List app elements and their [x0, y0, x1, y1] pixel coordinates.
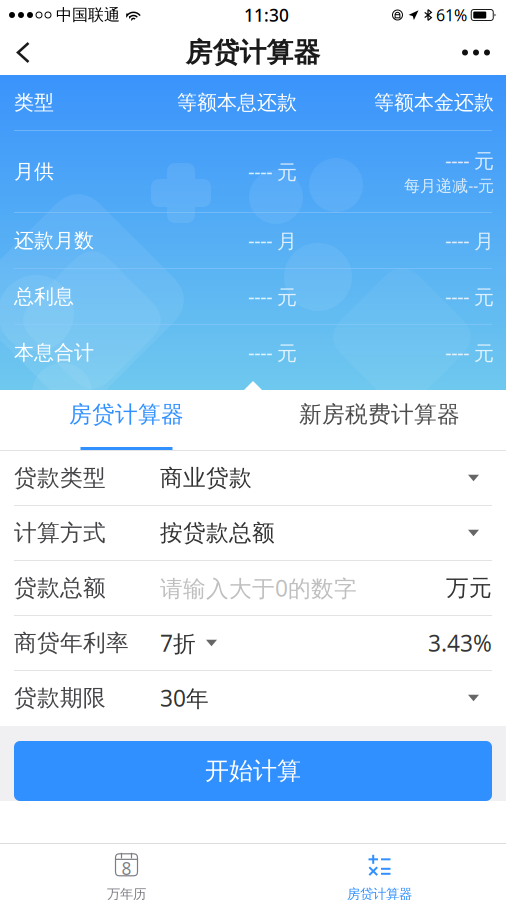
staticText: 计算方式 — [14, 519, 106, 547]
button[interactable]: 贷款类型 — [0, 451, 506, 505]
staticText: ---- 元 — [248, 283, 297, 310]
staticText: 新房税费计算器 — [299, 401, 460, 428]
staticText: 按贷款总额 — [160, 519, 275, 547]
staticText: 61% — [436, 4, 467, 26]
staticText: 等额本息还款 — [177, 90, 297, 115]
staticText: 11:30 — [244, 3, 289, 26]
staticText: 请输入大于0的数字 — [160, 573, 357, 603]
staticText: ---- 月 — [248, 227, 297, 254]
staticText: ---- 月 — [445, 227, 494, 254]
staticText: ---- 元 — [445, 147, 494, 174]
staticText: 7折 — [160, 628, 196, 658]
staticText: 房贷计算器 — [69, 401, 184, 428]
staticText: 总利息 — [14, 284, 74, 309]
button[interactable]: 贷款总额 — [0, 561, 506, 615]
button[interactable]: 计算方式 — [0, 506, 506, 560]
staticText: 房贷计算器 — [185, 36, 320, 69]
button[interactable]: 房贷计算器 — [0, 390, 253, 450]
staticText: 商业贷款 — [160, 464, 252, 492]
staticText: ---- 元 — [445, 339, 494, 366]
button[interactable]: 返回 — [0, 30, 47, 75]
button[interactable]: 房贷计算器 — [253, 844, 506, 900]
staticText: 万元 — [446, 574, 492, 602]
staticText: 贷款类型 — [14, 464, 106, 492]
button[interactable]: 商贷年利率 — [0, 616, 506, 670]
staticText: ---- 元 — [248, 339, 297, 366]
staticText: 30年 — [160, 683, 209, 713]
staticText: 等额本金还款 — [374, 90, 494, 115]
staticText: 房贷计算器 — [347, 886, 412, 900]
staticText: 月供 — [14, 159, 54, 184]
staticText: 8 — [121, 857, 131, 880]
staticText: 每月递减--元 — [404, 175, 494, 196]
staticText: 贷款总额 — [14, 574, 106, 602]
staticText: 中国联通 — [56, 5, 120, 25]
staticText: 3.43% — [428, 628, 492, 658]
button[interactable]: 贷款期限 — [0, 671, 506, 725]
staticText: 商贷年利率 — [14, 629, 129, 657]
staticText: ---- 元 — [445, 283, 494, 310]
staticText: ---- 元 — [248, 158, 297, 185]
button[interactable]: 新房税费计算器 — [253, 390, 506, 450]
staticText: 万年历 — [107, 886, 146, 900]
staticText: 还款月数 — [14, 228, 94, 253]
staticText: 贷款期限 — [14, 684, 106, 712]
staticText: 类型 — [14, 90, 54, 115]
button[interactable]: 开始计算 — [0, 741, 506, 801]
button[interactable]: 更多 — [446, 30, 506, 75]
staticText: 本息合计 — [14, 340, 94, 365]
staticText: 开始计算 — [205, 756, 301, 786]
button[interactable]: 8 — [0, 844, 253, 900]
